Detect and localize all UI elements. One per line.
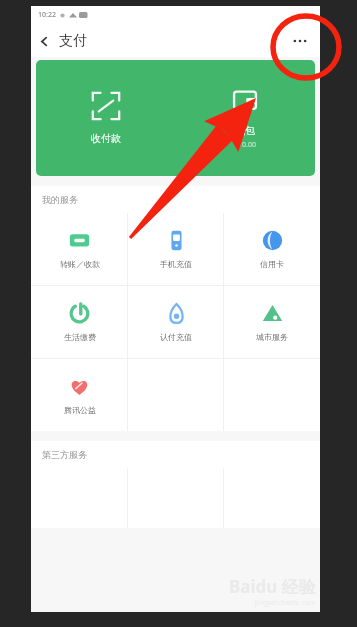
button[interactable]: Back [31, 28, 57, 54]
staticText: 转账／收款 [60, 259, 100, 269]
staticText: 手机充值 [160, 259, 192, 269]
staticText: Baidu 经验 [229, 575, 316, 598]
staticText: 第三方服务 [42, 449, 87, 460]
button[interactable]: More options [286, 27, 314, 55]
button[interactable]: 信用卡 [224, 213, 320, 285]
staticText: 城市服务 [256, 332, 288, 342]
staticText: 10:22 [38, 10, 56, 20]
staticText: 我的服务 [42, 194, 78, 205]
button[interactable]: 认付充值 [128, 286, 224, 358]
button[interactable]: 手机充值 [128, 213, 224, 285]
button[interactable]: 转账／收款 [31, 213, 128, 285]
staticText: 腾讯公益 [64, 405, 96, 415]
staticText: jingyan.baidu.com [255, 598, 316, 608]
button[interactable]: 城市服务 [224, 286, 320, 358]
staticText: 生活缴费 [64, 332, 96, 342]
staticText: 收付款 [91, 132, 121, 145]
button[interactable]: 腾讯公益 [31, 359, 128, 431]
staticText: 钱包 [235, 124, 255, 137]
staticText: 认付充值 [160, 332, 192, 342]
staticText: ￥0.00 [235, 140, 256, 150]
button[interactable]: 收付款 [36, 60, 175, 176]
button[interactable]: 钱包 [175, 60, 315, 176]
staticText: 支付 [59, 32, 87, 50]
button[interactable]: 生活缴费 [31, 286, 128, 358]
staticText: 信用卡 [260, 259, 284, 269]
